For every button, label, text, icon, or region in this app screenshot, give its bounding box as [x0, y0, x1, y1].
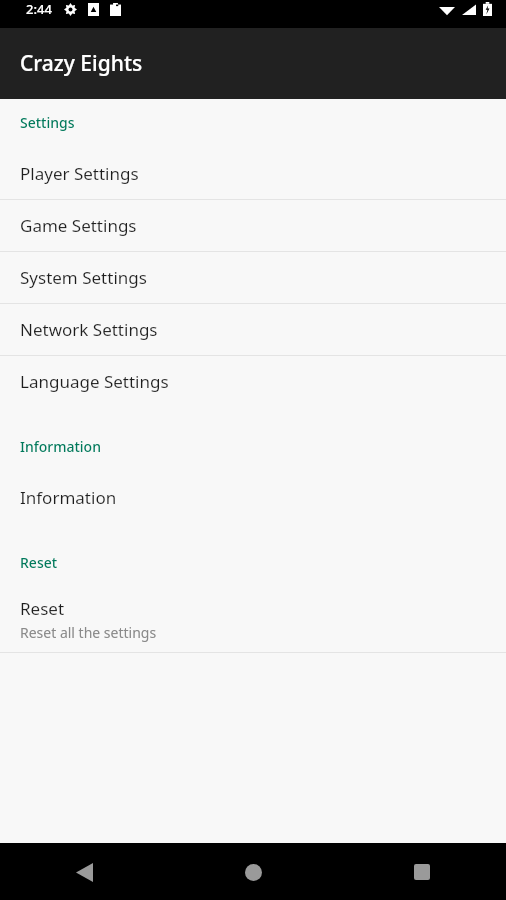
staticText: System Settings — [20, 266, 147, 289]
staticText: Reset all the settings — [20, 623, 157, 642]
staticText: Language Settings — [20, 370, 169, 393]
button[interactable]: Home — [231, 850, 275, 894]
staticText: Information — [20, 486, 117, 509]
button[interactable]: Information — [0, 472, 506, 523]
staticText: Information — [20, 437, 101, 456]
staticText: Reset — [20, 597, 65, 620]
button[interactable]: Game Settings — [0, 200, 506, 251]
staticText: Settings — [20, 113, 75, 132]
button[interactable]: Network Settings — [0, 304, 506, 355]
button[interactable]: Reset — [0, 586, 506, 652]
staticText: Crazy Eights — [20, 49, 143, 78]
staticText: Reset — [20, 553, 58, 572]
button[interactable]: Recent apps — [400, 850, 444, 894]
button[interactable]: Player Settings — [0, 148, 506, 199]
staticText: Game Settings — [20, 214, 137, 237]
button[interactable]: System Settings — [0, 252, 506, 303]
button[interactable]: Language Settings — [0, 356, 506, 407]
staticText: Network Settings — [20, 318, 158, 341]
button[interactable]: Back — [62, 850, 106, 894]
staticText: Player Settings — [20, 162, 139, 185]
staticText: 2:44 — [26, 0, 52, 18]
